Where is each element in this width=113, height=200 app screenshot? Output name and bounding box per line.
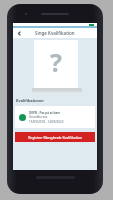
button[interactable]: Back — [14, 28, 24, 38]
staticText: DKPB - Pas på at køre — [29, 111, 61, 115]
staticText: ? — [50, 45, 62, 79]
staticText: Grundkursus — [29, 115, 48, 119]
staticText: 15/09/2018 - 14/09/2023 — [29, 120, 64, 124]
staticText: Kvalifikationer — [16, 98, 45, 103]
button[interactable]: DKPB - Pas på at køre — [15, 106, 95, 128]
staticText: Singe Kvalifikation — [35, 30, 75, 36]
staticText: Registrer Manglende Kvalifikation — [28, 135, 82, 140]
button[interactable]: Registrer Manglende Kvalifikation — [15, 132, 95, 142]
